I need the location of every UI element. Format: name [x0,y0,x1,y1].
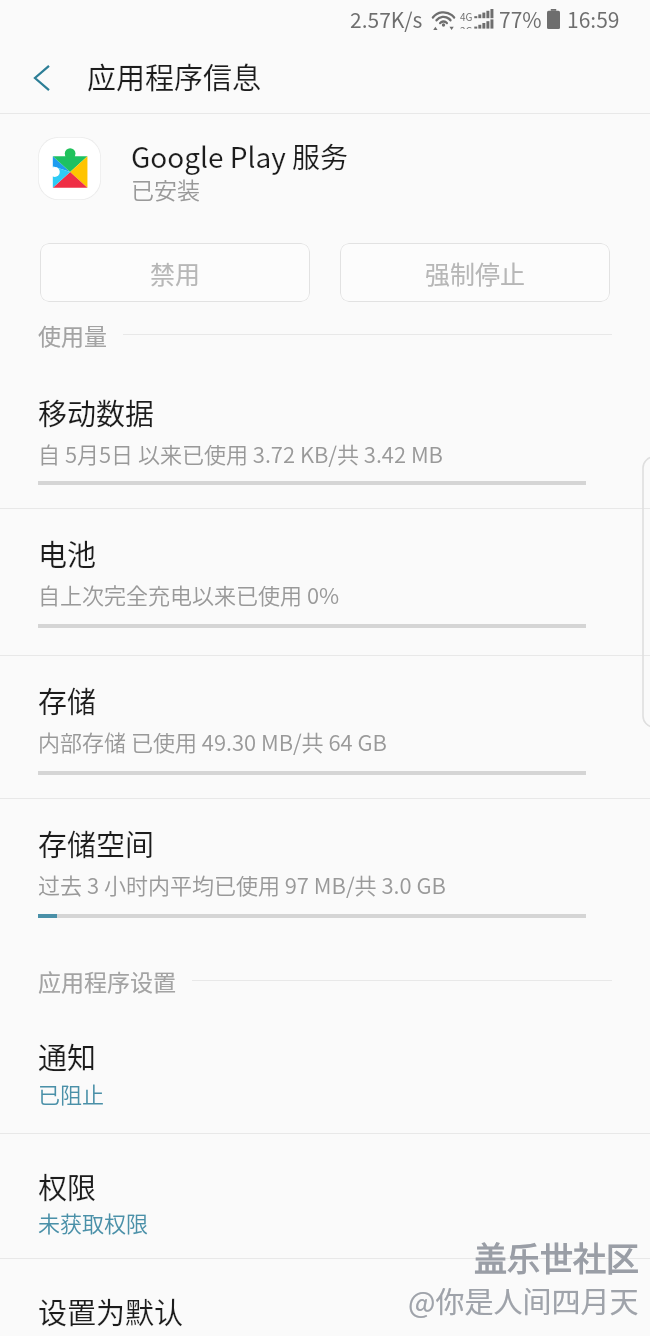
button[interactable]: 存储 [0,656,650,799]
staticText: 应用程序设置 [38,964,176,997]
staticText: 过去 3 小时内平均已使用 97 MB/共 3.0 GB [38,868,446,900]
staticText: @你是人间四月天 [408,1279,639,1321]
staticText: 未获取权限 [38,1206,149,1238]
staticText: 16:59 [567,4,620,34]
staticText: 移动数据 [38,391,155,433]
button[interactable]: 权限 [0,1134,650,1259]
button[interactable]: 存储空间 [0,799,650,938]
button[interactable]: 禁用 [40,243,310,302]
staticText: 存储空间 [38,822,155,864]
staticText: 电池 [38,532,97,574]
staticText: 内部存储 已使用 49.30 MB/共 64 GB [38,725,387,757]
staticText: 77% [499,4,542,34]
staticText: 2G [460,23,473,29]
staticText: 2.57K/s [350,4,423,34]
staticText: 盖乐世社区 [474,1233,639,1281]
staticText: 权限 [38,1165,97,1207]
button[interactable]: Back [0,38,72,113]
staticText: 禁用 [150,255,201,291]
staticText: 4G [460,9,473,23]
staticText: Google Play 服务 [131,136,349,177]
staticText: 已安装 [131,172,200,205]
button[interactable]: 移动数据 [0,370,650,509]
staticText: 强制停止 [425,255,526,291]
staticText: 使用量 [38,318,107,351]
button[interactable]: 设置为默认 [0,1259,650,1336]
staticText: 自 5月5日 以来已使用 3.72 KB/共 3.42 MB [38,437,443,469]
button[interactable]: 强制停止 [340,243,610,302]
button[interactable]: 电池 [0,509,650,656]
staticText: 已阻止 [38,1077,105,1109]
staticText: 通知 [38,1035,97,1077]
staticText: 自上次完全充电以来已使用 0% [38,578,340,610]
staticText: 设置为默认 [38,1290,184,1332]
staticText: 存储 [38,679,97,721]
button[interactable]: 通知 [0,1018,650,1134]
staticText: 应用程序信息 [87,55,262,97]
